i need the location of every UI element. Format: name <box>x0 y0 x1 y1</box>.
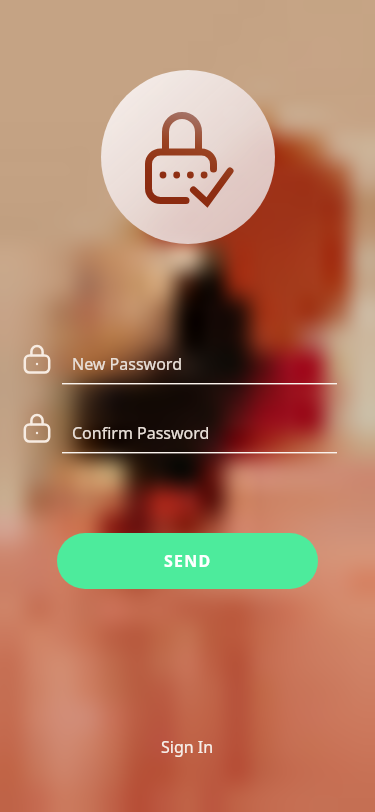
button[interactable]: Confirm Password <box>16 417 337 459</box>
staticText: New Password <box>72 353 182 375</box>
button[interactable]: New Password <box>16 348 337 390</box>
staticText: Sign In <box>161 736 214 758</box>
staticText: SEND <box>164 550 212 572</box>
button[interactable]: Sign In <box>141 728 234 766</box>
staticText: Confirm Password <box>72 422 210 444</box>
button[interactable]: SEND <box>57 533 318 589</box>
